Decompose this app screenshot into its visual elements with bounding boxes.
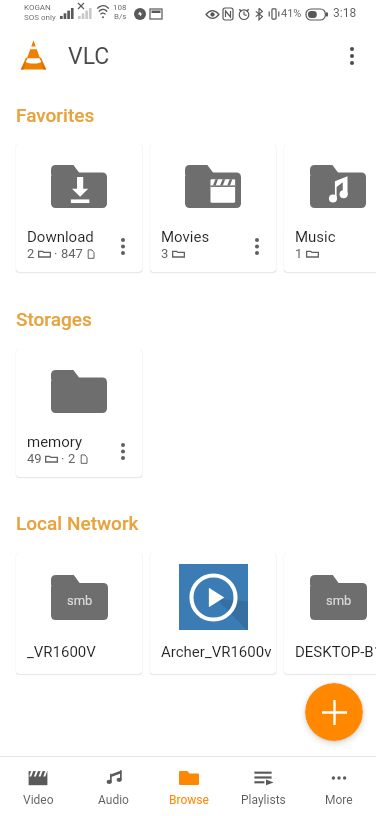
button[interactable]: memory (16, 349, 142, 477)
staticText: 2 (68, 451, 76, 466)
staticText: 3 (161, 246, 169, 261)
button[interactable]: Playlists (226, 757, 301, 816)
button[interactable]: More options (328, 32, 376, 80)
staticText: VLC (68, 43, 110, 70)
button[interactable]: smb (284, 553, 376, 674)
staticText: 2 (27, 246, 35, 261)
staticText: Audio (98, 793, 129, 807)
staticText: B/s (114, 12, 127, 21)
staticText: 1 (295, 246, 303, 261)
button[interactable]: smb (16, 553, 142, 674)
staticText: memory (27, 433, 83, 451)
button[interactable]: More (108, 231, 138, 261)
staticText: 49 (27, 451, 42, 466)
button[interactable]: Browse (151, 757, 226, 816)
staticText: Favorites (16, 104, 95, 126)
staticText: smb (326, 593, 352, 608)
staticText: · (61, 451, 65, 466)
staticText: KOGAN (24, 3, 51, 12)
staticText: Archer_VR1600v (161, 643, 272, 661)
staticText: 41% (281, 7, 302, 20)
staticText: Local Network (16, 512, 139, 534)
staticText: DESKTOP-B1 (295, 643, 376, 661)
button[interactable]: Video (0, 757, 76, 816)
staticText: Storages (16, 308, 92, 330)
staticText: Playlists (241, 793, 286, 807)
button[interactable]: Audio (76, 757, 151, 816)
staticText: Movies (161, 228, 210, 246)
staticText: · (54, 246, 58, 261)
staticText: Browse (169, 793, 209, 807)
staticText: 847 (61, 246, 83, 261)
staticText: Download (27, 228, 94, 246)
button[interactable]: Movies (150, 144, 276, 272)
button[interactable]: More (108, 436, 138, 466)
staticText: _VR1600V (27, 643, 96, 661)
staticText: Music (295, 228, 336, 246)
staticText: smb (67, 593, 93, 608)
button[interactable]: More (242, 231, 272, 261)
button[interactable]: Music (284, 144, 376, 272)
button[interactable]: Archer_VR1600v (150, 553, 276, 674)
staticText: SOS only (24, 13, 56, 22)
staticText: Video (23, 793, 54, 807)
staticText: 108 (113, 3, 127, 12)
staticText: 3:18 (333, 6, 357, 20)
button[interactable]: Download (16, 144, 142, 272)
button[interactable]: Add (305, 683, 363, 741)
staticText: More (325, 793, 353, 807)
button[interactable]: More (301, 757, 376, 816)
